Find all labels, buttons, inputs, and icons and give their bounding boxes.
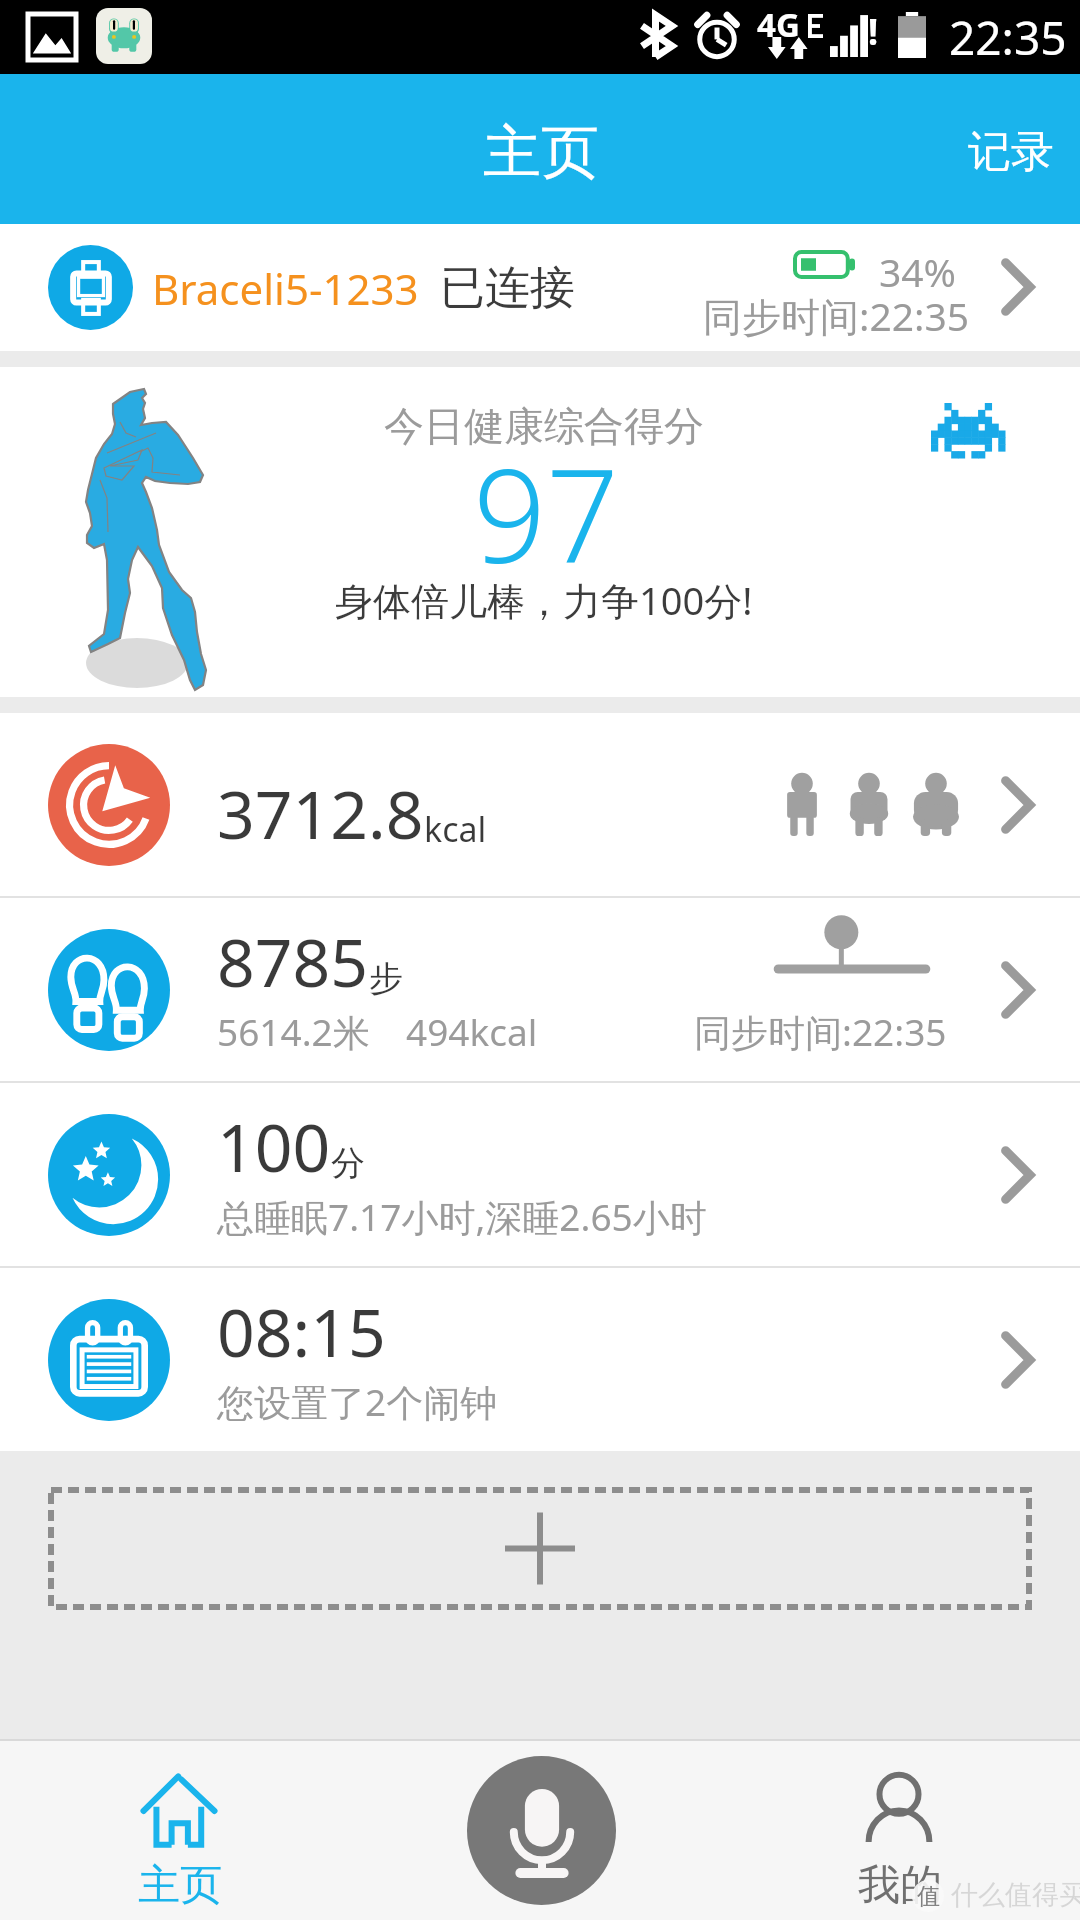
button[interactable]: 08:15 <box>0 1268 1080 1451</box>
staticText: kcal <box>424 806 487 852</box>
button[interactable]: 100 <box>0 1083 1080 1266</box>
staticText: 今日健康综合得分 <box>384 401 704 451</box>
staticText: 步 <box>369 957 403 1000</box>
staticText: 值 <box>917 1882 940 1911</box>
button[interactable]: 记录 <box>910 74 1080 224</box>
staticText: 同步时间:22:35 <box>694 1006 947 1057</box>
staticText: 已连接 <box>440 260 575 317</box>
staticText: 主页 <box>138 1859 222 1912</box>
button[interactable]: Braceli5-1233 <box>0 224 1080 351</box>
button[interactable]: 3712.8 <box>0 713 1080 896</box>
staticText: ! <box>868 7 879 56</box>
staticText: 3712.8 <box>217 768 424 858</box>
button[interactable]: 8785 <box>0 898 1080 1081</box>
staticText: 494kcal <box>406 1006 538 1056</box>
staticText: 什么值得买 <box>951 1878 1080 1912</box>
staticText: 4G <box>757 2 800 47</box>
staticText: 我的 <box>858 1859 942 1912</box>
staticText: 主页 <box>483 116 599 189</box>
staticText: 22:35 <box>949 6 1067 69</box>
staticText: 100 <box>217 1101 331 1191</box>
staticText: 分 <box>331 1142 365 1185</box>
button[interactable]: Voice assistant <box>467 1756 616 1905</box>
staticText: 总睡眠7.17小时,深睡2.65小时 <box>217 1191 707 1242</box>
staticText: 97 <box>473 426 620 600</box>
staticText: 同步时间:22:35 <box>703 289 970 342</box>
staticText: 身体倍儿棒，力争100分! <box>335 574 753 626</box>
staticText: 记录 <box>968 125 1054 179</box>
button[interactable]: 我的 <box>720 1741 1080 1920</box>
staticText: 您设置了2个闹钟 <box>217 1376 498 1427</box>
staticText: 8785 <box>217 916 369 1006</box>
staticText: 08:15 <box>217 1286 386 1376</box>
button[interactable]: 主页 <box>0 1741 360 1920</box>
staticText: Braceli5-1233 <box>152 260 419 317</box>
staticText: 34% <box>879 245 957 298</box>
button[interactable]: Add device <box>48 1487 1032 1610</box>
staticText: 5614.2米 <box>217 1006 370 1057</box>
